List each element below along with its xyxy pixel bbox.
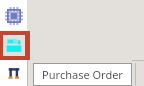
button[interactable]: Purchase Order: [0, 31, 30, 60]
button[interactable]: Reports: [0, 60, 27, 86]
button[interactable]: Production: [0, 0, 27, 31]
staticText: Purchase Order: [42, 67, 123, 82]
